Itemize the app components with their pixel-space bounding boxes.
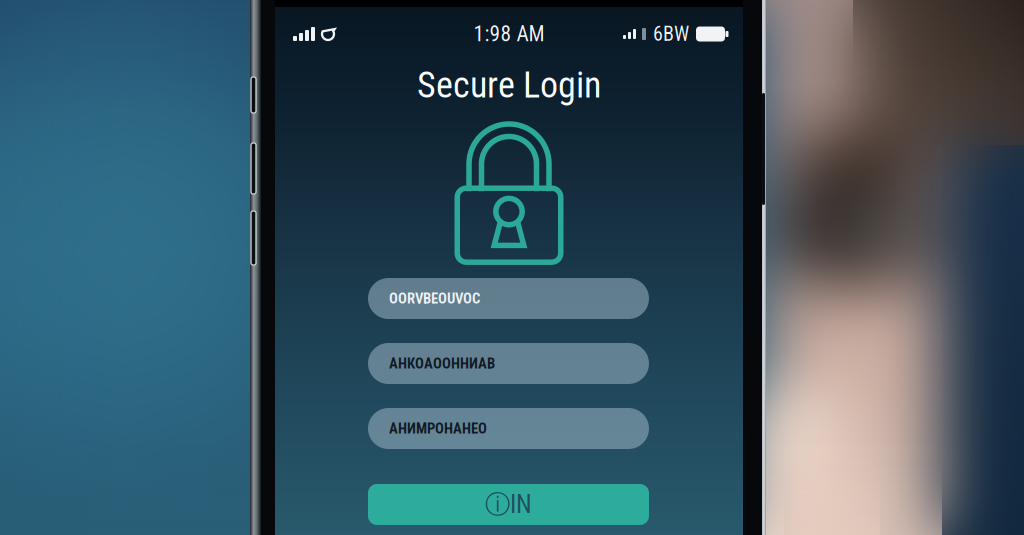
staticText: ⓘIN [485,488,532,520]
button[interactable]: ⓘIN [368,484,649,525]
staticText: 6BW [653,22,689,46]
staticText: Secure Login [417,64,601,106]
staticText: 1:98 AM [473,21,544,46]
button[interactable]: АНКОАООННИАВ [368,343,649,384]
staticText: АНИМРОНАНЕО [389,420,487,437]
button[interactable]: OORVBEOUVOC [368,278,649,319]
button[interactable]: АНИМРОНАНЕО [368,408,649,449]
staticText: OORVBEOUVOC [389,290,480,307]
staticText: АНКОАООННИАВ [389,355,495,372]
